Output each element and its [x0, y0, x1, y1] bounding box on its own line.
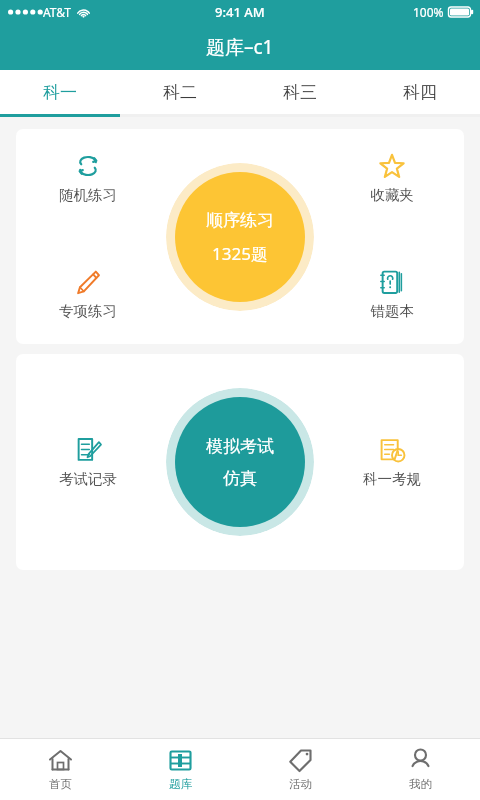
button[interactable]: 随机练习 [50, 151, 126, 206]
staticText: 首页 [49, 777, 72, 791]
staticText: 科一考规 [363, 470, 421, 488]
other: 考试记录 [75, 437, 101, 463]
staticText: 专项练习 [59, 302, 117, 320]
button[interactable]: 科一考规 [354, 435, 430, 490]
staticText: 9:41 AM [215, 3, 265, 21]
staticText: 100% [413, 4, 444, 20]
staticText: 考试记录 [59, 470, 117, 488]
button[interactable]: 科二 [120, 70, 240, 114]
button[interactable]: 题库 [120, 739, 240, 800]
staticText: 活动 [289, 777, 312, 791]
staticText: 题库–c1 [206, 34, 274, 60]
staticText: 错题本 [370, 302, 414, 320]
other: 收藏夹 [379, 153, 405, 179]
button[interactable]: 科三 [240, 70, 360, 114]
staticText: 科四 [403, 82, 437, 103]
staticText: 仿真 [223, 468, 257, 489]
other: 科一考规 [379, 437, 405, 463]
staticText: 题库 [169, 777, 192, 791]
other: 错题本 [379, 269, 405, 295]
button[interactable]: 考试记录 [50, 435, 126, 490]
button[interactable]: 收藏夹 [354, 151, 430, 206]
staticText: 收藏夹 [370, 186, 414, 204]
button[interactable]: 科一 [0, 70, 120, 114]
staticText: 我的 [409, 777, 432, 791]
staticText: 顺序练习 [206, 210, 274, 231]
button[interactable]: 模拟考试 [166, 388, 314, 536]
staticText: 科三 [283, 82, 317, 103]
staticText: AT&T [43, 4, 71, 20]
other: 随机练习 [75, 153, 101, 179]
staticText: 1325题 [212, 242, 268, 265]
staticText: 模拟考试 [206, 436, 274, 457]
other: 专项练习 [75, 269, 101, 295]
staticText: 科二 [163, 82, 197, 103]
button[interactable]: 科四 [360, 70, 480, 114]
button[interactable]: 错题本 [354, 267, 430, 322]
button[interactable]: 专项练习 [50, 267, 126, 322]
staticText: 科一 [43, 82, 77, 103]
button[interactable]: 首页 [0, 739, 120, 800]
button[interactable]: 我的 [360, 739, 480, 800]
button[interactable]: 顺序练习 [166, 163, 314, 311]
button[interactable]: 活动 [240, 739, 360, 800]
staticText: 随机练习 [59, 186, 117, 204]
